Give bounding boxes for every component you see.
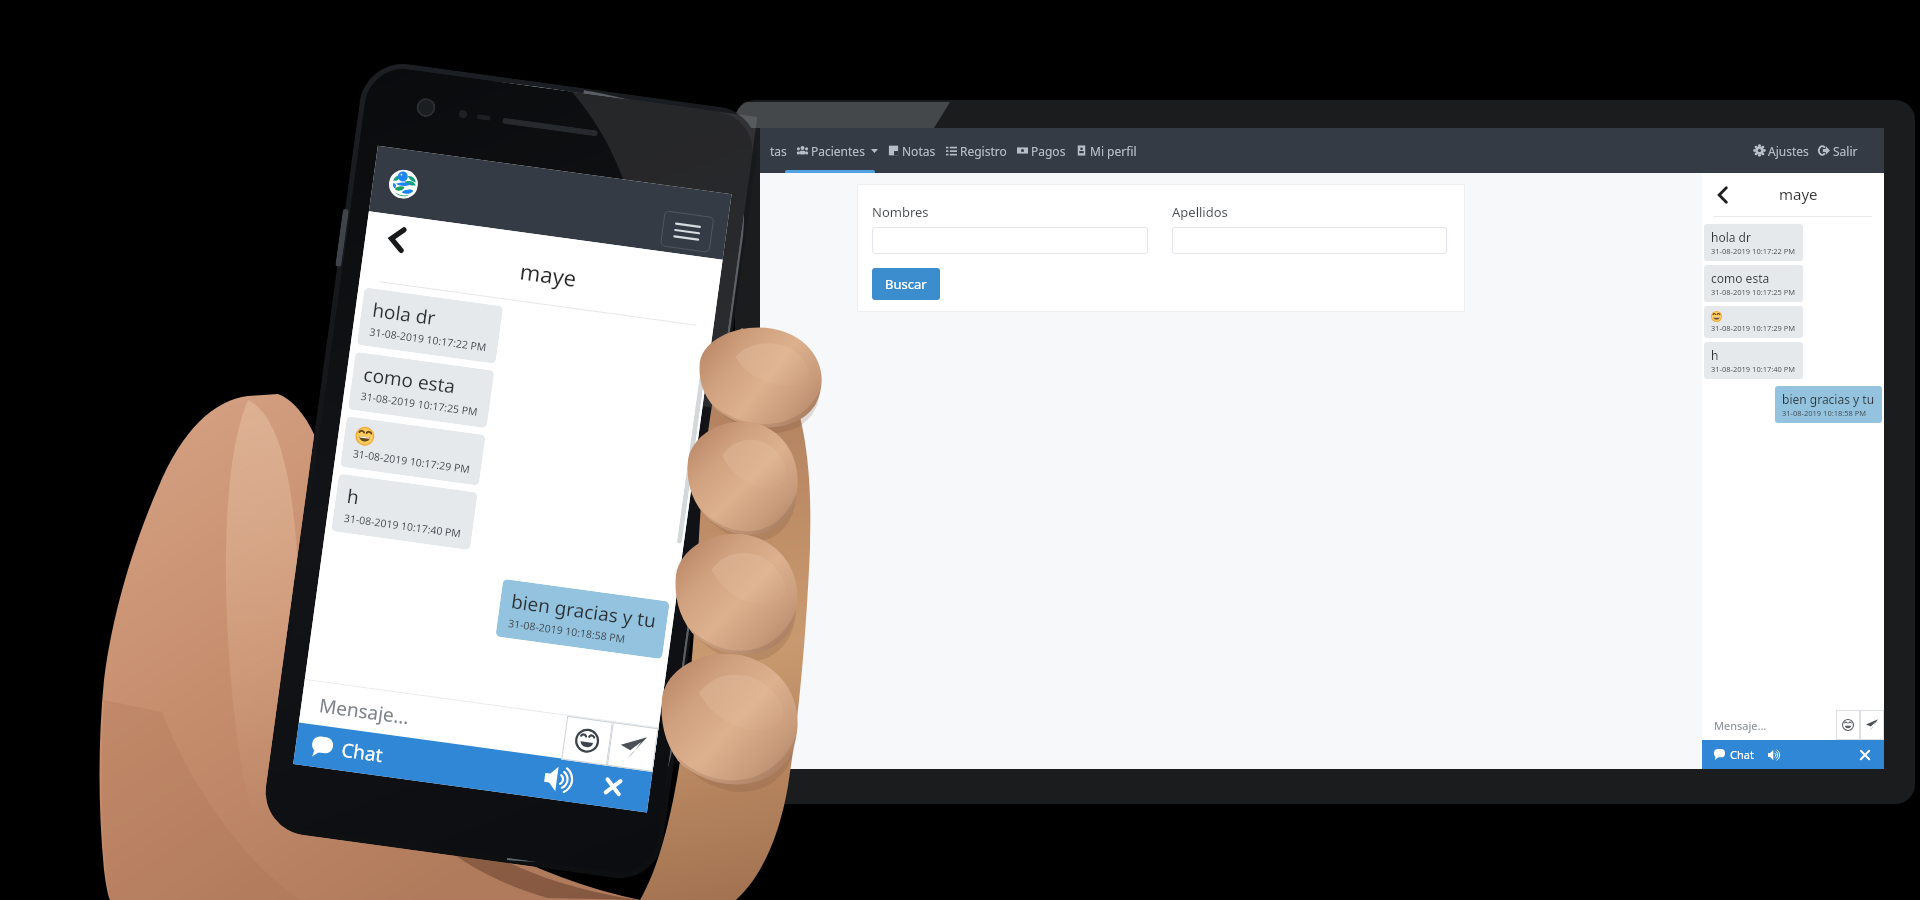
button[interactable]: como esta — [1704, 265, 1803, 302]
staticText: Nombres — [872, 203, 929, 221]
staticText: bien gracias y tu — [1782, 391, 1875, 407]
staticText: 31-08-2019 10:17:40 PM — [1711, 364, 1796, 374]
staticText: Notas — [902, 143, 936, 159]
button[interactable]: Back — [1711, 183, 1735, 207]
staticText: hola dr — [371, 297, 438, 331]
staticText: Mi perfil — [1090, 143, 1137, 159]
staticText: h — [345, 483, 361, 510]
button[interactable]: Apellidos field — [1172, 227, 1447, 254]
button[interactable]: Pagos — [1012, 128, 1071, 173]
button[interactable]: Logo — [387, 168, 420, 200]
button[interactable]: Close — [1858, 748, 1872, 762]
button[interactable]: h — [331, 474, 478, 550]
staticText: Mensaje... — [1714, 718, 1767, 733]
button[interactable]: Ajustes — [1749, 128, 1814, 173]
button[interactable]: Send — [607, 722, 658, 772]
button[interactable]: Back — [375, 217, 420, 262]
staticText: 31-08-2019 10:17:29 PM — [1711, 323, 1796, 333]
staticText: Chat — [1730, 747, 1754, 762]
button[interactable]: Sound — [543, 763, 574, 795]
button[interactable]: Emoji — [561, 716, 613, 766]
staticText: Pagos — [1031, 143, 1066, 159]
staticText: Chat — [340, 737, 385, 768]
button[interactable]: Registro — [941, 128, 1012, 173]
button[interactable]: hola dr — [357, 287, 503, 364]
staticText: h — [1711, 347, 1719, 363]
button[interactable]: Send — [1860, 710, 1884, 740]
button[interactable]: 31-08-2019 10:17:29 PM — [340, 416, 486, 486]
staticText: 31-08-2019 10:18:58 PM — [507, 616, 626, 646]
staticText: Ajustes — [1768, 143, 1809, 159]
staticText: 31-08-2019 10:17:22 PM — [1711, 246, 1796, 256]
staticText: Registro — [960, 143, 1007, 159]
staticText: maye — [518, 255, 579, 293]
staticText: Apellidos — [1172, 203, 1228, 221]
staticText: como esta — [1711, 270, 1770, 286]
button[interactable]: Close — [601, 774, 625, 799]
button[interactable]: Pacientes — [792, 128, 883, 173]
button[interactable]: tas — [765, 128, 792, 173]
button[interactable]: Chat — [293, 722, 386, 776]
button[interactable]: hola dr — [1704, 224, 1803, 261]
button[interactable]: Buscar — [872, 268, 940, 300]
button[interactable]: bien gracias y tu — [495, 579, 670, 659]
staticText: Pacientes — [811, 143, 865, 159]
button[interactable]: 31-08-2019 10:17:29 PM — [1704, 306, 1803, 338]
staticText: hola dr — [1711, 229, 1751, 245]
staticText: Buscar — [885, 275, 927, 293]
staticText: Salir — [1833, 143, 1858, 159]
staticText: 31-08-2019 10:18:58 PM — [1782, 408, 1867, 418]
button[interactable]: bien gracias y tu — [1775, 386, 1882, 423]
button[interactable]: Nombres field — [872, 227, 1148, 254]
button[interactable]: como esta — [348, 352, 494, 428]
staticText: 31-08-2019 10:17:25 PM — [360, 389, 479, 419]
button[interactable]: Notas — [883, 128, 941, 173]
staticText: 31-08-2019 10:17:25 PM — [1711, 287, 1796, 297]
button[interactable]: Menu — [660, 210, 714, 253]
staticText: Mensaje... — [318, 692, 411, 730]
staticText: bien gracias y tu — [510, 588, 658, 634]
staticText: maye — [1779, 184, 1818, 204]
button[interactable]: Mi perfil — [1071, 128, 1142, 173]
staticText: tas — [770, 143, 787, 159]
staticText: 31-08-2019 10:17:22 PM — [369, 324, 487, 354]
staticText: 31-08-2019 10:17:40 PM — [343, 511, 462, 541]
staticText: como esta — [362, 361, 458, 400]
staticText: 31-08-2019 10:17:29 PM — [352, 446, 471, 476]
button[interactable]: Salir — [1814, 128, 1863, 173]
button[interactable]: Chat — [1702, 740, 1884, 769]
button[interactable]: h — [1704, 342, 1803, 379]
button[interactable]: Emoji — [1836, 710, 1860, 740]
